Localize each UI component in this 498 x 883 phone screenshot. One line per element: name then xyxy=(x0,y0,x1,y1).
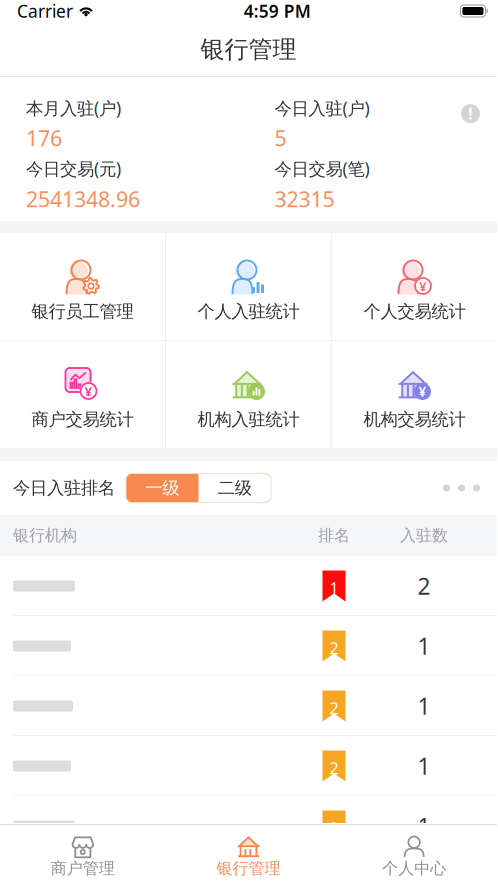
staticText: 排名 xyxy=(318,526,350,545)
staticText: 个人交易统计 xyxy=(363,301,465,322)
staticText: 5 xyxy=(274,124,286,152)
staticText: 1 xyxy=(417,811,430,841)
button[interactable]: 2 xyxy=(0,736,497,796)
staticText: ! xyxy=(468,103,473,124)
staticText: 1 xyxy=(329,577,338,599)
button[interactable]: 2 xyxy=(0,796,497,856)
staticText: ¥ xyxy=(84,382,92,400)
staticText: 商户交易统计 xyxy=(31,409,133,430)
button[interactable]: 2 xyxy=(0,616,497,676)
staticText: 入驻数 xyxy=(400,526,448,545)
staticText: 银行员工管理 xyxy=(31,301,133,322)
staticText: 2 xyxy=(329,817,338,839)
staticText: 32315 xyxy=(274,185,334,213)
button[interactable]: 2 xyxy=(0,676,497,736)
staticText: 2 xyxy=(329,637,338,659)
staticText: 机构交易统计 xyxy=(363,409,465,430)
staticText: 一级 xyxy=(145,477,179,499)
button[interactable]: 商户管理 xyxy=(0,824,166,883)
staticText: 银行机构 xyxy=(13,526,77,545)
button[interactable]: ¥ xyxy=(332,233,497,340)
button[interactable]: 个人入驻统计 xyxy=(166,233,331,340)
staticText: 2541348.96 xyxy=(26,185,140,213)
staticText: 2 xyxy=(417,571,430,601)
staticText: 今日入驻排名 xyxy=(13,477,115,499)
staticText: ¥ xyxy=(418,383,426,400)
button[interactable]: 个人中心 xyxy=(331,824,497,883)
button[interactable]: 银行管理 xyxy=(166,824,331,883)
staticText: Carrier xyxy=(17,0,73,22)
button[interactable]: 二级 xyxy=(198,473,271,502)
staticText: 本月入驻(户) xyxy=(26,96,121,119)
button[interactable]: 机构入驻统计 xyxy=(166,341,331,448)
button[interactable]: 一级 xyxy=(126,473,198,502)
staticText: 个人中心 xyxy=(382,859,446,878)
staticText: 今日入驻(户) xyxy=(274,96,369,119)
staticText: 银行管理 xyxy=(200,35,296,64)
staticText: 商户管理 xyxy=(51,859,115,878)
staticText: 1 xyxy=(417,631,430,661)
staticText: 2 xyxy=(329,757,338,779)
button[interactable]: ¥ xyxy=(332,341,497,448)
staticText: 二级 xyxy=(218,477,252,499)
staticText: 银行管理 xyxy=(216,859,280,878)
button[interactable]: 1 xyxy=(0,556,497,616)
staticText: 今日交易(元) xyxy=(26,157,121,180)
staticText: 4:59 PM xyxy=(244,0,311,22)
staticText: 176 xyxy=(26,124,62,152)
staticText: 2 xyxy=(329,697,338,719)
staticText: 1 xyxy=(417,751,430,781)
staticText: 今日交易(笔) xyxy=(274,157,369,180)
staticText: 个人入驻统计 xyxy=(197,301,299,322)
button[interactable]: ¥ xyxy=(0,341,165,448)
staticText: 机构入驻统计 xyxy=(197,409,299,430)
staticText: 1 xyxy=(417,691,430,721)
staticText: ¥ xyxy=(419,277,427,295)
button[interactable]: 银行员工管理 xyxy=(0,233,165,340)
